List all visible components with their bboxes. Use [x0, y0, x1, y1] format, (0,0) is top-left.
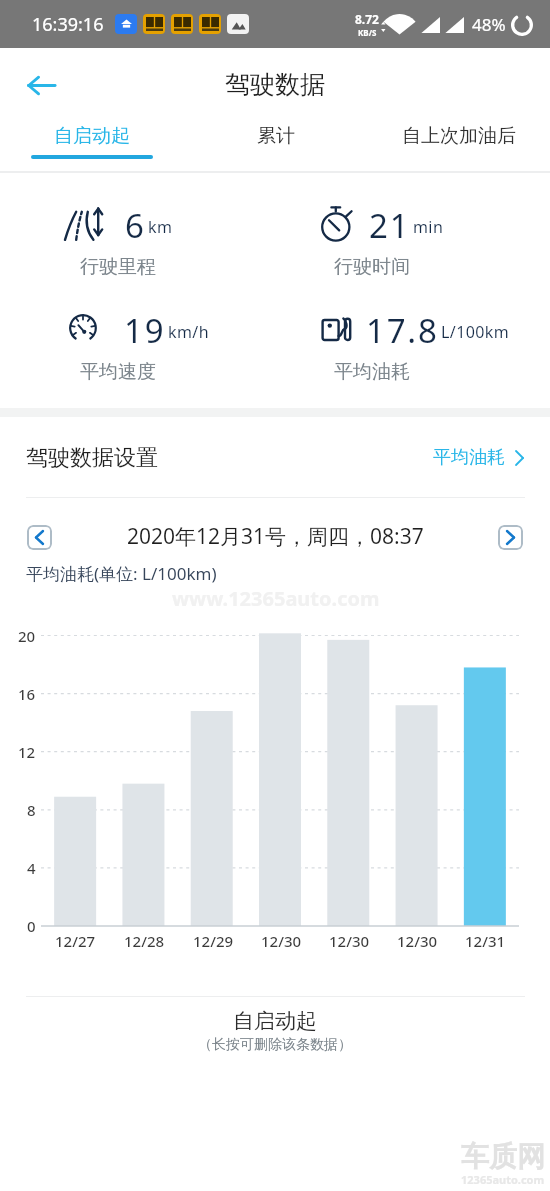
staticText: 12 — [18, 742, 36, 762]
staticText: （长按可删除该条数据） — [0, 1036, 550, 1054]
staticText: 12/30 — [261, 931, 302, 951]
button[interactable]: Back — [18, 62, 64, 108]
button[interactable]: 自启动起 — [0, 112, 184, 172]
staticText: 12/27 — [55, 931, 96, 951]
staticText: 19 — [124, 308, 166, 348]
staticText: 21 — [369, 203, 411, 243]
staticText: 17.8 — [366, 308, 439, 348]
button[interactable]: 驾驶数据设置 — [0, 417, 550, 498]
staticText: L/100km — [441, 321, 510, 343]
staticText: www.12365auto.com — [172, 585, 380, 612]
staticText: 行驶时间 — [334, 255, 410, 279]
staticText: 8 — [27, 800, 36, 820]
staticText: 16 — [18, 684, 36, 704]
staticText: 12/28 — [124, 931, 165, 951]
button[interactable]: Previous day — [27, 525, 52, 550]
staticText: 12365auto.com — [461, 1172, 545, 1187]
staticText: 6 — [125, 203, 146, 243]
staticText: KB/S — [358, 27, 377, 38]
staticText: 行驶里程 — [80, 255, 156, 279]
staticText: 12/31 — [465, 931, 506, 951]
staticText: 平均速度 — [80, 360, 156, 384]
staticText: 平均油耗 — [433, 446, 505, 469]
staticText: 驾驶数据设置 — [26, 444, 158, 472]
staticText: 自启动起 — [54, 124, 130, 148]
staticText: 20 — [18, 626, 36, 646]
staticText: 自上次加油后 — [402, 124, 516, 148]
button[interactable]: Next day — [498, 525, 523, 550]
staticText: 8.72 — [355, 11, 379, 27]
staticText: 12/30 — [397, 931, 438, 951]
button[interactable]: 累计 — [184, 112, 367, 172]
staticText: 16:39:16 — [32, 12, 104, 37]
staticText: 累计 — [257, 124, 295, 148]
staticText: min — [413, 216, 444, 238]
staticText: km/h — [168, 321, 209, 343]
staticText: 4 — [27, 858, 36, 878]
button[interactable]: 自上次加油后 — [367, 112, 550, 172]
staticText: 0 — [27, 916, 36, 936]
staticText: 平均油耗 — [334, 360, 410, 384]
staticText: 2020年12月31号，周四，08:37 — [127, 522, 424, 551]
staticText: km — [148, 216, 173, 238]
staticText: 12/29 — [193, 931, 234, 951]
staticText: 平均油耗(单位: L/100km) — [26, 562, 217, 585]
staticText: 驾驶数据 — [225, 69, 325, 100]
staticText: 车质网 — [461, 1139, 545, 1174]
staticText: 12/30 — [329, 931, 370, 951]
staticText: 48% — [472, 13, 506, 36]
staticText: 自启动起 — [0, 1008, 550, 1034]
